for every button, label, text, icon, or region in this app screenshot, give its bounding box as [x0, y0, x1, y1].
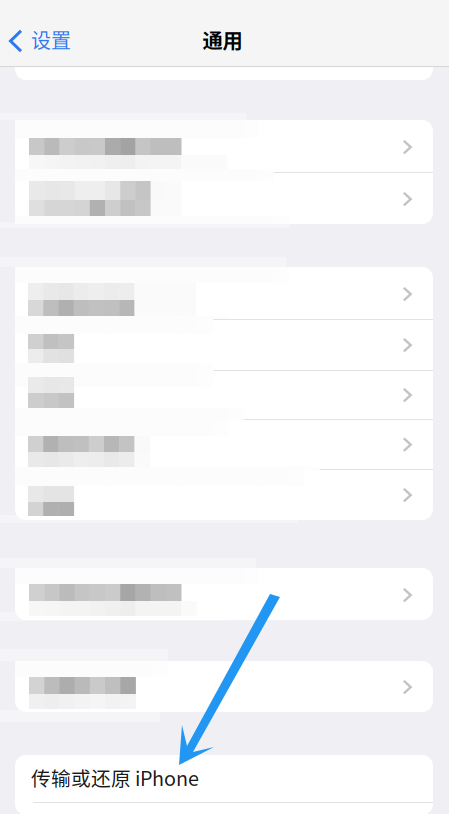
button[interactable]: Settings item	[15, 661, 433, 712]
button[interactable]: 传输或还原 iPhone	[15, 755, 433, 802]
button[interactable]: Settings item	[15, 172, 433, 224]
button[interactable]: Settings item	[15, 568, 433, 620]
button[interactable]: Settings item	[15, 419, 433, 469]
button[interactable]: 设置	[7, 19, 77, 63]
staticText: 传输或还原 iPhone	[31, 763, 199, 792]
button[interactable]: Settings item	[15, 319, 433, 370]
staticText: 通用	[202, 25, 242, 54]
button[interactable]: Settings item	[15, 120, 433, 172]
button[interactable]: Settings item	[15, 267, 433, 319]
button[interactable]: Settings item	[15, 469, 433, 520]
button[interactable]: Settings item	[15, 370, 433, 419]
staticText: 设置	[31, 25, 71, 54]
